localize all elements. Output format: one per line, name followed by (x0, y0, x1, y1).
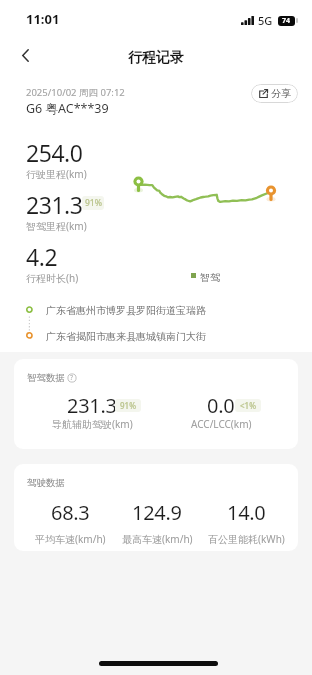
staticText: 68.3 (51, 499, 90, 526)
button[interactable]: 分享 (251, 84, 298, 103)
staticText: 驾驶数据 (27, 477, 65, 489)
staticText: 导航辅助驾驶(km) (52, 417, 133, 431)
staticText: 4.2 (26, 241, 58, 272)
staticText: 254.0 (26, 137, 83, 168)
staticText: 行驶里程(km) (26, 167, 87, 181)
staticText: 91% (85, 197, 102, 209)
button[interactable]: Back (9, 39, 41, 71)
staticText: 智驾里程(km) (26, 219, 87, 233)
staticText: 2025/10/02 周四 07:12 (26, 86, 125, 99)
staticText: 智驾数据 (27, 372, 65, 384)
staticText: 74 (282, 16, 291, 26)
staticText: 0.0 (207, 392, 235, 419)
staticText: 行程记录 (128, 49, 184, 67)
staticText: ? (70, 373, 74, 383)
staticText: 14.0 (227, 499, 266, 526)
staticText: G6 粤AC***39 (26, 100, 109, 117)
staticText: <1% (240, 400, 256, 411)
staticText: 行程时长(h) (26, 271, 79, 285)
staticText: 智驾 (200, 271, 220, 284)
staticText: 分享 (271, 87, 291, 100)
staticText: 平均车速(km/h) (35, 532, 106, 546)
staticText: 91% (120, 400, 136, 411)
staticText: 最高车速(km/h) (122, 532, 193, 546)
staticText: 广东省惠州市博罗县罗阳街道宝瑞路 (46, 304, 206, 317)
staticText: ACC/LCC(km) (191, 417, 252, 431)
staticText: 5G (258, 13, 273, 28)
staticText: 11:01 (26, 10, 60, 28)
staticText: 124.9 (132, 499, 182, 526)
staticText: 231.3 (26, 189, 83, 220)
staticText: 百公里能耗(kWh) (208, 532, 285, 546)
staticText: 广东省揭阳市惠来县惠城镇南门大街 (46, 330, 206, 343)
staticText: 231.3 (67, 392, 117, 419)
